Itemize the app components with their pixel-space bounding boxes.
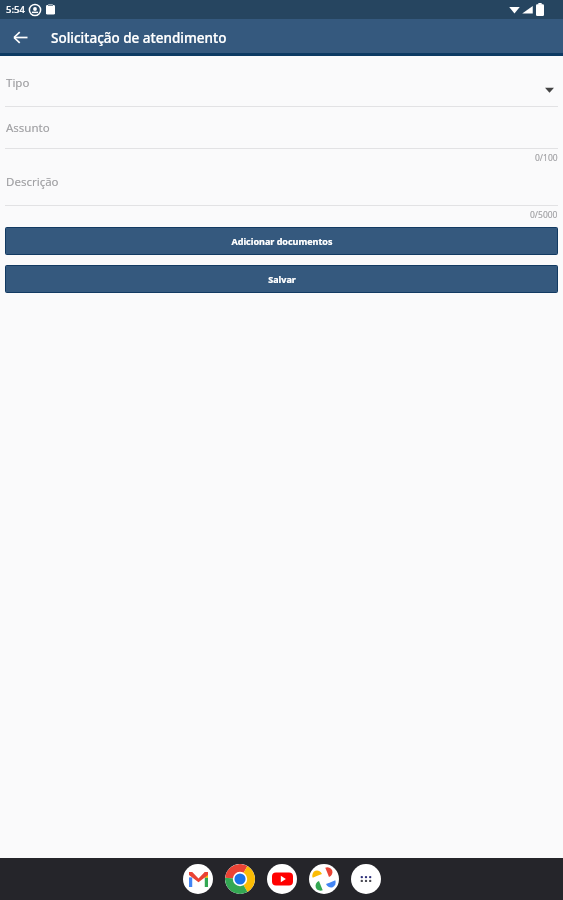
staticText: Salvar xyxy=(268,273,296,285)
button[interactable]: Chrome xyxy=(225,864,255,894)
button[interactable]: Back xyxy=(0,19,40,56)
staticText: Descrição xyxy=(6,174,59,190)
button[interactable]: Salvar xyxy=(5,265,558,293)
button[interactable]: Descrição xyxy=(5,162,558,205)
button[interactable]: Gmail xyxy=(183,864,213,894)
staticText: Solicitação de atendimento xyxy=(51,29,227,47)
button[interactable]: All apps xyxy=(351,864,381,894)
staticText: Assunto xyxy=(6,120,50,136)
button[interactable]: Photos xyxy=(309,864,339,894)
staticText: Adicionar documentos xyxy=(231,235,333,247)
button[interactable]: YouTube xyxy=(267,864,297,894)
button[interactable]: Tipo xyxy=(5,56,558,106)
staticText: 0/5000 xyxy=(530,209,558,221)
button[interactable]: Assunto xyxy=(5,107,558,148)
staticText: 0/100 xyxy=(535,152,558,164)
staticText: Tipo xyxy=(6,75,30,91)
staticText: 5:54 xyxy=(6,3,25,16)
button[interactable]: Adicionar documentos xyxy=(5,227,558,255)
